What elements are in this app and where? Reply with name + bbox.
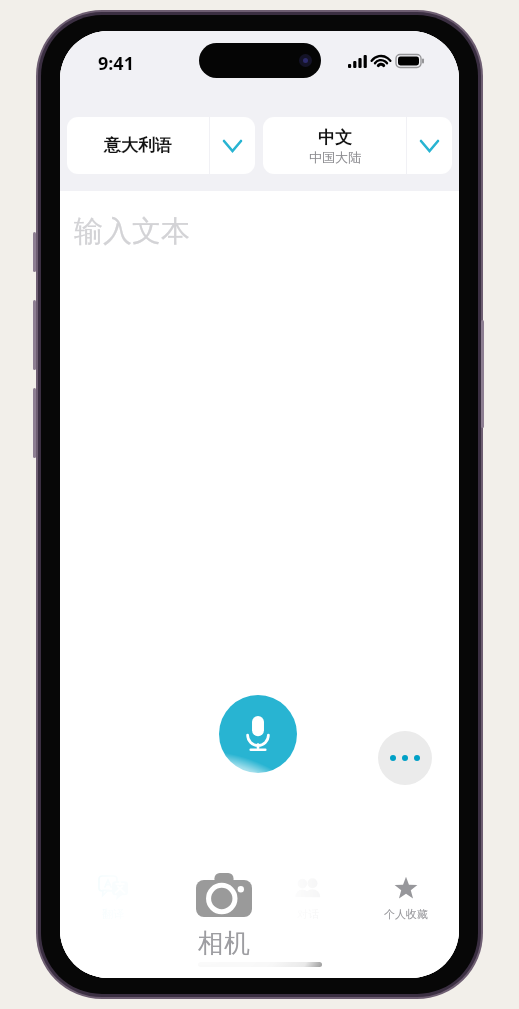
staticText: 相机 [200, 907, 222, 921]
button[interactable]: Camera tab [168, 873, 280, 960]
staticText: 意大利语 [104, 135, 172, 156]
button[interactable]: More options [378, 731, 432, 785]
staticText: 中国大陆 [309, 149, 361, 165]
staticText: 个人收藏 [384, 907, 428, 921]
button[interactable]: Start voice translation [219, 695, 297, 773]
button[interactable]: 意大利语 [67, 117, 255, 174]
staticText: 9:41 [98, 51, 134, 76]
staticText: 输入文本 [74, 213, 190, 250]
staticText: 相机 [198, 927, 250, 960]
button[interactable]: 个人收藏 [362, 872, 450, 921]
staticText: 中文 [318, 127, 352, 148]
button[interactable]: 中文 [263, 117, 452, 174]
button[interactable]: 相机 [167, 872, 255, 921]
